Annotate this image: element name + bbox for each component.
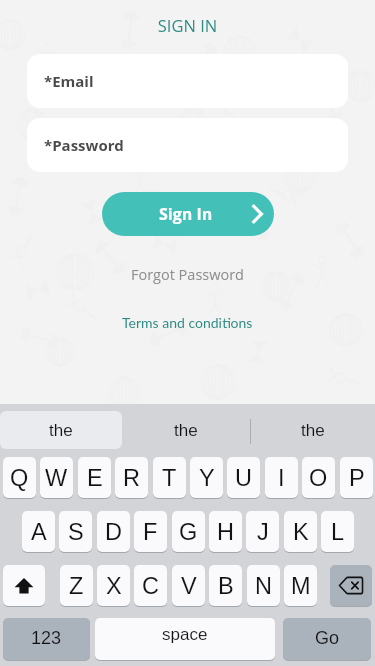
button[interactable]: G [172,511,205,552]
button[interactable]: H [209,511,242,552]
button[interactable]: *Email [27,54,348,108]
button[interactable]: S [59,511,92,552]
button[interactable]: B [209,565,242,606]
button[interactable]: Terms and conditions [112,309,263,336]
button[interactable]: Backspace [330,565,372,606]
staticText: D [105,519,122,545]
button[interactable]: K [284,511,317,552]
staticText: SIGN IN [0,14,375,36]
button[interactable]: the [0,411,122,449]
staticText: C [142,573,159,599]
staticText: M [291,573,311,599]
staticText: S [68,519,84,545]
button[interactable]: J [246,511,279,552]
staticText: Terms and conditions [122,314,253,331]
staticText: J [257,519,269,545]
button[interactable]: I [265,457,298,498]
staticText: G [179,519,198,545]
button[interactable]: P [340,457,373,498]
button[interactable]: Forgot Password [121,260,254,290]
button[interactable]: D [97,511,130,552]
staticText: Forgot Password [131,265,244,285]
button[interactable]: Y [190,457,223,498]
staticText: Go [315,628,340,648]
staticText: N [255,573,272,599]
staticText: I [278,465,285,491]
staticText: Sign In [159,203,213,225]
staticText: U [235,465,252,491]
staticText: F [143,519,158,545]
button[interactable]: L [321,511,354,552]
button[interactable]: W [40,457,73,498]
button[interactable]: X [97,565,130,606]
staticText: X [106,573,122,599]
button[interactable]: the [251,411,375,449]
staticText: T [162,465,177,491]
staticText: L [331,519,345,545]
staticText: Z [69,573,84,599]
button[interactable]: O [302,457,335,498]
staticText: K [293,519,309,545]
staticText: P [349,465,365,491]
button[interactable]: N [247,565,280,606]
staticText: the [301,421,325,440]
button[interactable]: F [134,511,167,552]
staticText: R [123,465,140,491]
button[interactable]: Q [3,457,36,498]
button[interactable]: R [115,457,148,498]
staticText: B [218,573,234,599]
button[interactable]: *Password [27,118,348,172]
button[interactable]: T [153,457,186,498]
button[interactable]: space [95,618,275,660]
button[interactable]: U [227,457,260,498]
button[interactable]: C [134,565,167,606]
staticText: O [309,465,328,491]
staticText: space [162,625,208,644]
staticText: the [49,421,73,440]
button[interactable]: Z [60,565,93,606]
button[interactable]: 123 [3,618,90,660]
staticText: A [31,519,47,545]
staticText: Y [199,465,215,491]
staticText: H [217,519,234,545]
staticText: 123 [31,628,62,648]
button[interactable]: M [284,565,317,606]
staticText: Q [10,465,29,491]
staticText: E [87,465,103,491]
button[interactable]: A [22,511,55,552]
staticText: V [181,573,197,599]
staticText: the [174,421,198,440]
button[interactable]: Shift [3,565,45,606]
staticText: *Email [44,71,94,91]
button[interactable]: Go [283,618,371,660]
button[interactable]: E [78,457,111,498]
staticText: *Password [44,135,124,155]
button[interactable]: V [172,565,205,606]
button[interactable]: Sign In [102,192,274,236]
button[interactable]: the [122,411,250,449]
staticText: W [45,465,68,491]
